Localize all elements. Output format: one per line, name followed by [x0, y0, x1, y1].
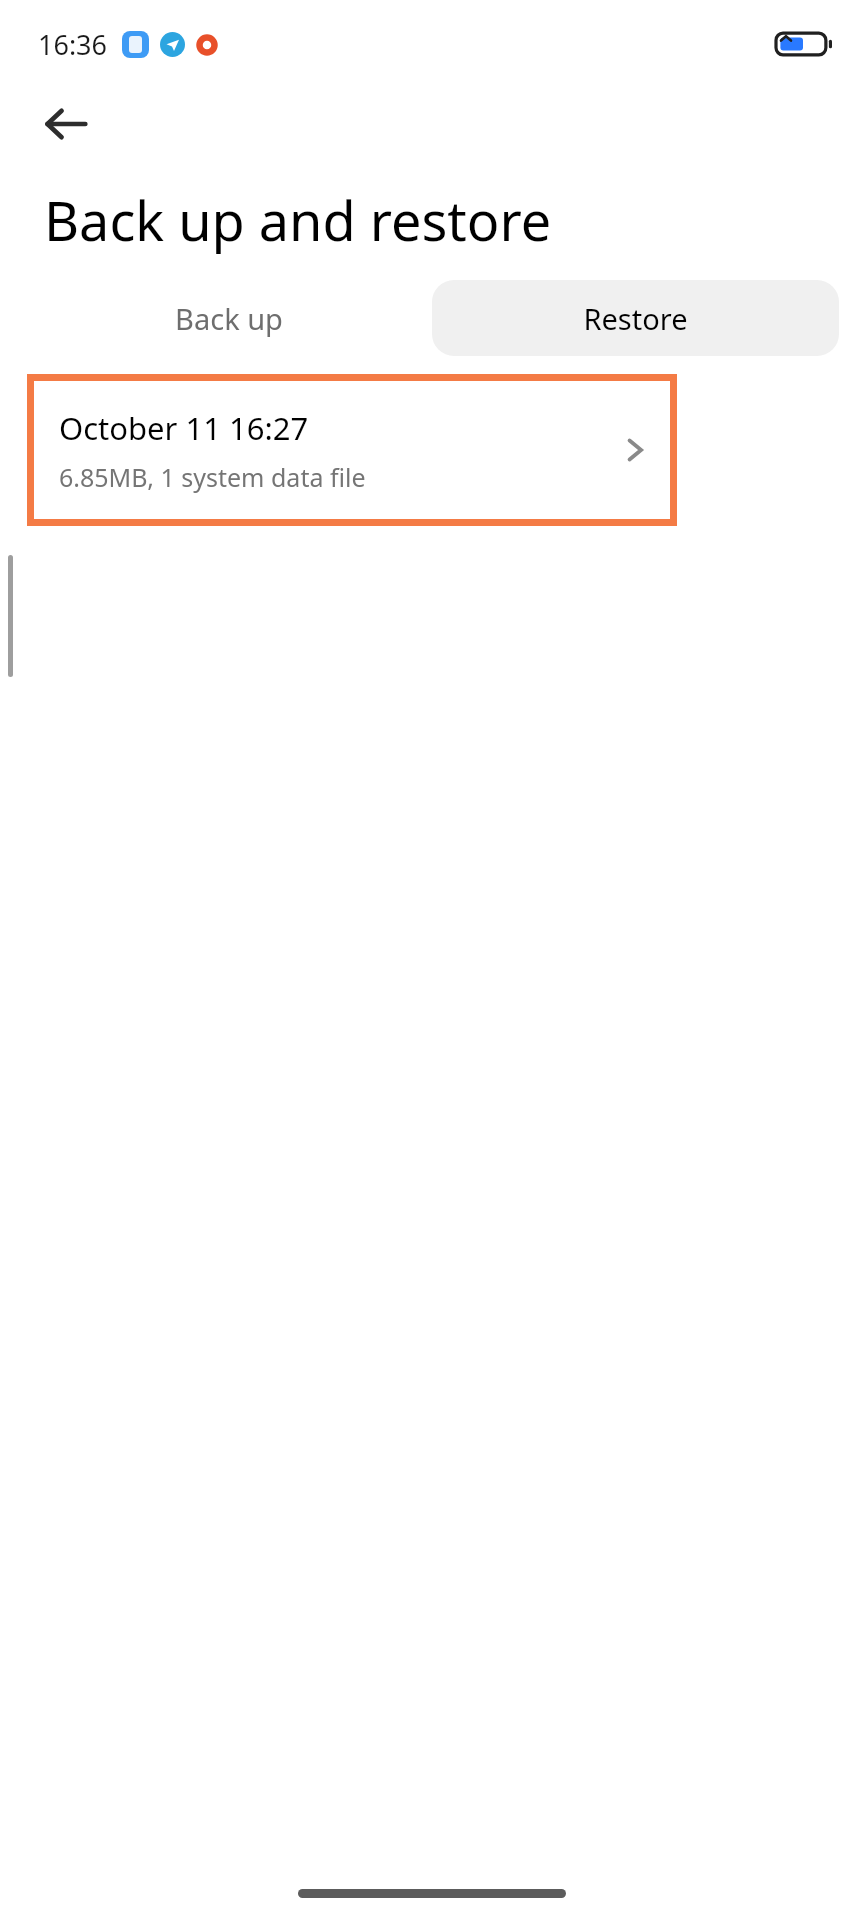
- staticText: Restore: [583, 299, 688, 338]
- button[interactable]: October 11 16:27: [34, 381, 670, 519]
- button[interactable]: Back: [34, 92, 98, 156]
- staticText: Back up: [175, 299, 283, 338]
- button[interactable]: Restore: [432, 280, 839, 356]
- staticText: 6.85MB, 1 system data file: [59, 460, 366, 494]
- button[interactable]: Back up: [25, 280, 432, 356]
- staticText: 16:36: [38, 26, 108, 63]
- staticText: Back up and restore: [44, 183, 552, 257]
- staticText: October 11 16:27: [59, 407, 309, 449]
